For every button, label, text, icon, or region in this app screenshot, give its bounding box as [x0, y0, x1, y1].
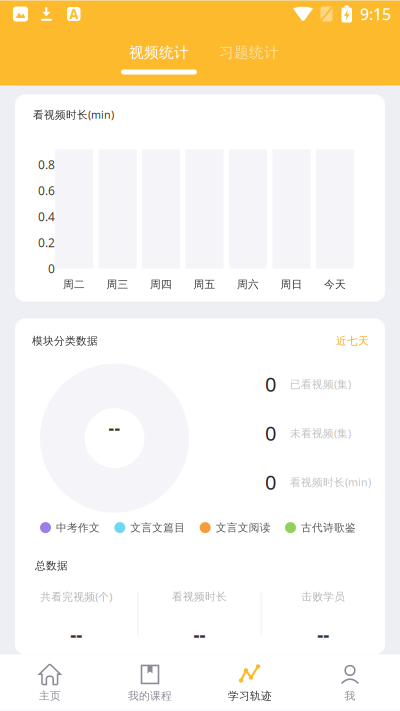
staticText: 看视频时长: [172, 590, 227, 603]
staticText: 看视频时长(min): [33, 107, 114, 122]
button[interactable]: 主页: [0, 655, 100, 709]
staticText: 模块分类数据: [32, 334, 98, 348]
staticText: 0.2: [38, 234, 55, 250]
staticText: 9:15: [360, 3, 391, 25]
staticText: 我: [344, 689, 355, 702]
staticText: 未看视频(集): [290, 426, 351, 440]
staticText: 0: [265, 469, 276, 495]
staticText: 学习轨迹: [228, 689, 272, 702]
staticText: 周二: [63, 278, 85, 291]
staticText: 周四: [150, 278, 172, 291]
button[interactable]: 我的课程: [100, 655, 200, 709]
staticText: --: [193, 622, 205, 647]
staticText: 总数据: [35, 559, 68, 572]
staticText: 习题统计: [219, 43, 279, 61]
staticText: 我的课程: [128, 689, 172, 702]
staticText: --: [317, 622, 329, 647]
staticText: 中考作文: [56, 521, 100, 534]
staticText: 文言文篇目: [130, 521, 185, 534]
staticText: --: [108, 417, 120, 440]
staticText: 今天: [324, 278, 346, 291]
staticText: 0.8: [38, 156, 55, 172]
staticText: 周日: [280, 278, 302, 291]
staticText: 周三: [106, 278, 128, 291]
staticText: 0: [265, 371, 276, 397]
button[interactable]: 学习轨迹: [200, 655, 300, 709]
staticText: 0: [265, 420, 276, 446]
staticText: A: [69, 5, 78, 23]
staticText: 0.6: [38, 182, 55, 198]
staticText: 看视频时长(min): [290, 475, 371, 489]
staticText: 视频统计: [129, 43, 189, 61]
staticText: --: [70, 622, 82, 647]
button[interactable]: 我: [300, 655, 400, 709]
staticText: 主页: [39, 689, 61, 702]
staticText: 文言文阅读: [216, 521, 271, 534]
staticText: 已看视频(集): [290, 377, 351, 391]
staticText: 周六: [237, 278, 259, 291]
staticText: 0.4: [38, 208, 55, 224]
button[interactable]: 视频统计: [114, 27, 204, 85]
button[interactable]: 习题统计: [204, 27, 294, 85]
staticText: 击败学员: [301, 590, 345, 603]
staticText: 周五: [193, 278, 215, 291]
staticText: 古代诗歌鉴: [301, 521, 356, 534]
staticText: 近七天: [336, 334, 369, 348]
button[interactable]: 近七天: [336, 334, 369, 348]
staticText: 共看完视频(个): [40, 589, 112, 604]
staticText: 0: [48, 260, 55, 276]
